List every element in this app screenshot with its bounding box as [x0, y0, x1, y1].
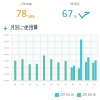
button[interactable]: 2019年度 [55, 93, 74, 97]
other: 電力 [3, 26, 8, 31]
button[interactable]: 2018年度 [77, 93, 96, 97]
staticText: kWh [28, 15, 35, 19]
other: 前年比 減少 [79, 12, 89, 19]
button[interactable]: ご使用量 [0, 0, 50, 24]
staticText: 月別ご使用量 [10, 25, 38, 31]
staticText: 前年比 [70, 2, 80, 6]
staticText: 2019年度 [60, 93, 74, 97]
staticText: % [74, 14, 77, 19]
staticText: ご使用量 [19, 2, 32, 6]
staticText: 67 [62, 7, 73, 20]
staticText: 2018年度 [82, 93, 96, 97]
staticText: 78 [16, 7, 27, 20]
button[interactable]: 電力 [0, 24, 100, 32]
button[interactable]: 前年比 [50, 0, 100, 24]
